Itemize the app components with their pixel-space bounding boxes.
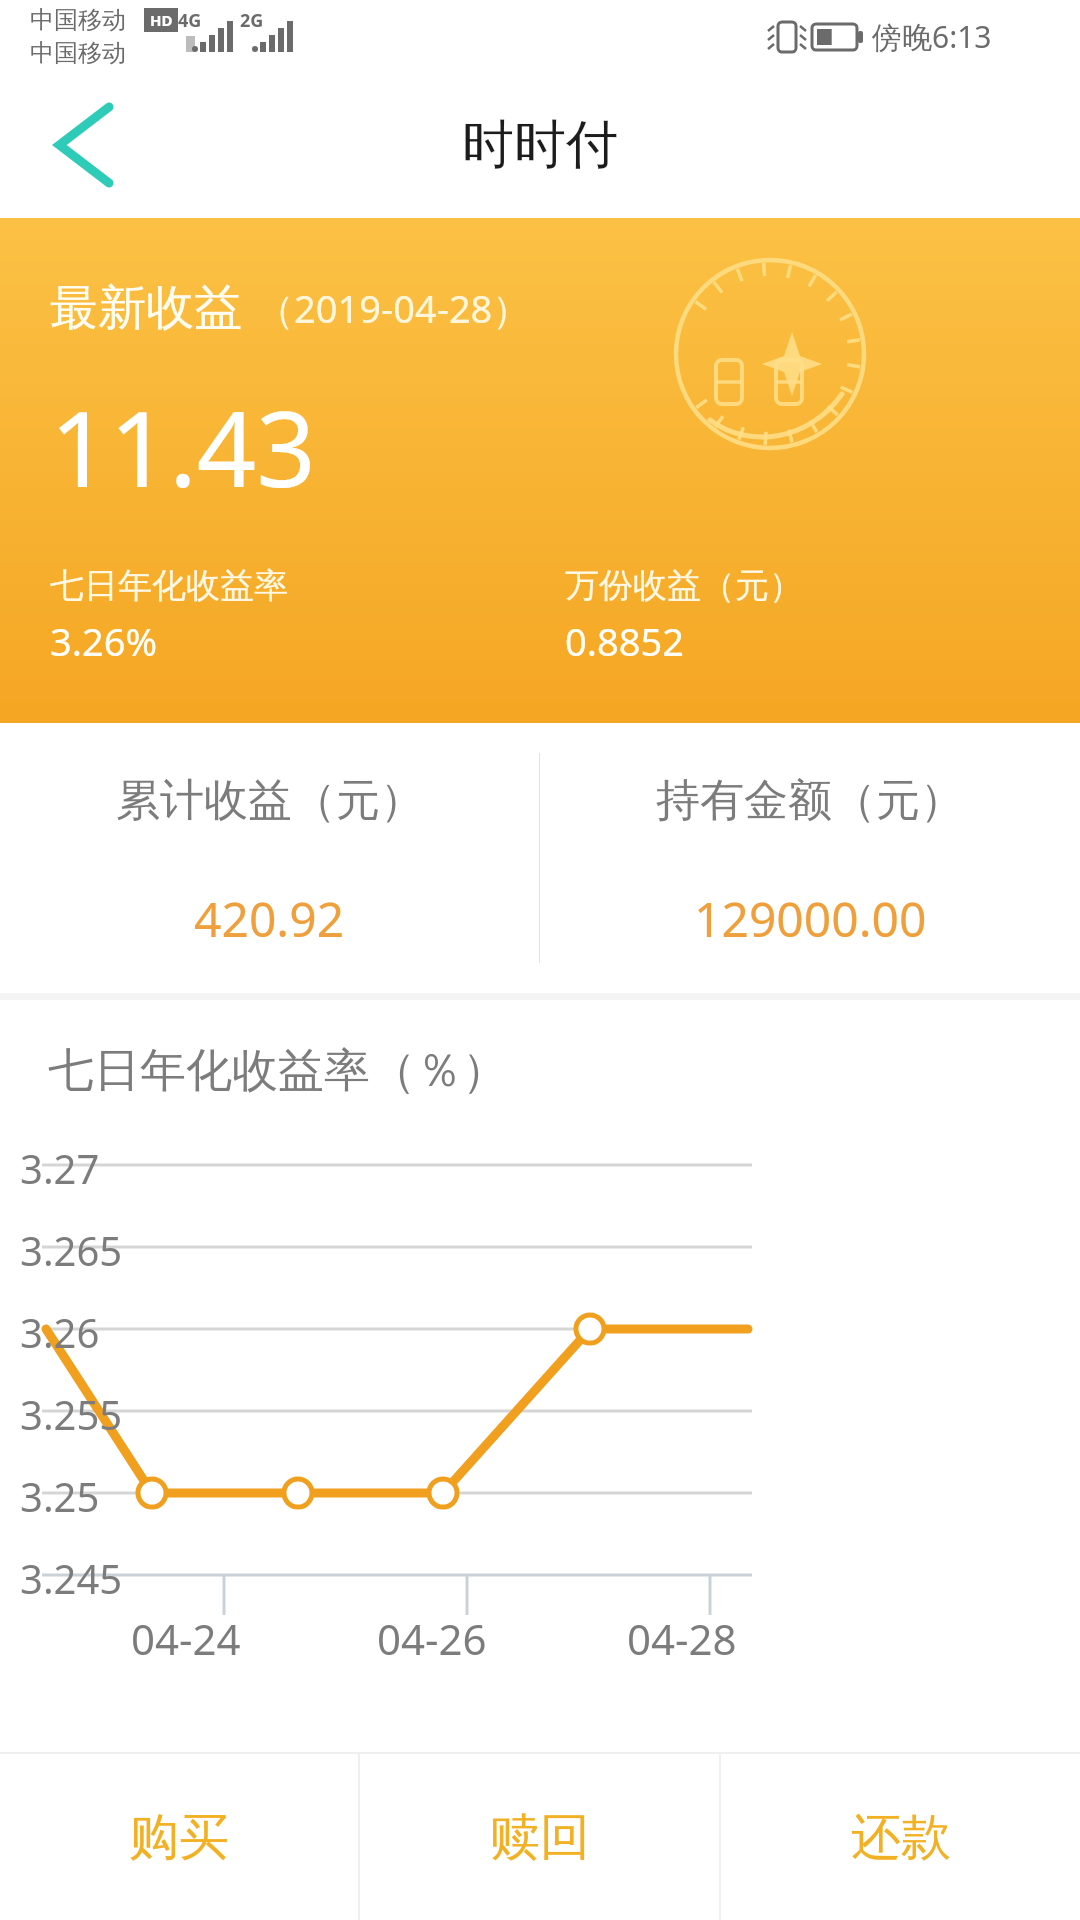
staticText: 11.43	[50, 376, 316, 518]
staticText: 04-28	[627, 1610, 737, 1667]
staticText: 3.255	[20, 1387, 123, 1441]
staticText: 累计收益（元）	[116, 773, 424, 828]
staticText: 时时付	[462, 112, 618, 178]
staticText: HD	[150, 10, 173, 30]
button[interactable]: 赎回	[360, 1754, 719, 1920]
staticText: 4G	[178, 8, 202, 33]
staticText: 04-24	[131, 1610, 241, 1667]
staticText: 0.8852	[565, 615, 684, 667]
button[interactable]: 购买	[0, 1754, 358, 1920]
staticText: 04-26	[377, 1610, 487, 1667]
staticText: 七日年化收益率	[50, 564, 288, 607]
staticText: 2G	[240, 8, 264, 33]
staticText: 万份收益（元）	[565, 564, 803, 607]
staticText: （2019-04-28）	[256, 282, 531, 334]
staticText: 3.27	[20, 1141, 100, 1195]
staticText: 最新收益	[50, 278, 242, 338]
staticText: 420.92	[194, 886, 345, 951]
button[interactable]: Back	[22, 95, 122, 195]
staticText: 129000.00	[694, 886, 927, 951]
staticText: 3.25	[20, 1469, 100, 1523]
staticText: 3.26	[20, 1305, 100, 1359]
button[interactable]: 还款	[721, 1754, 1080, 1920]
staticText: 持有金额（元）	[656, 773, 964, 828]
staticText: 中国移动	[30, 5, 126, 35]
staticText: 还款	[851, 1806, 951, 1869]
staticText: 七日年化收益率（％）	[48, 1042, 508, 1100]
staticText: 3.265	[20, 1223, 123, 1277]
staticText: 3.245	[20, 1551, 123, 1605]
staticText: 3.26%	[50, 615, 157, 667]
staticText: 购买	[129, 1806, 229, 1869]
staticText: 傍晚6:13	[872, 16, 992, 57]
staticText: 赎回	[490, 1806, 590, 1869]
staticText: 中国移动	[30, 38, 126, 68]
